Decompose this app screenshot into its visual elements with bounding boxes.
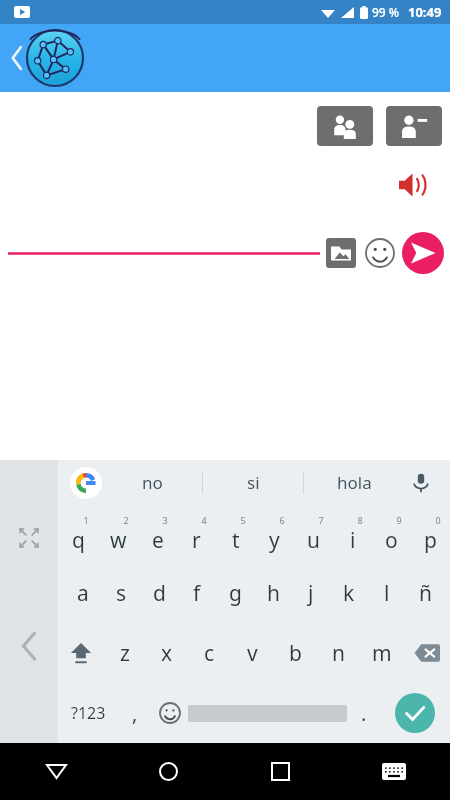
button[interactable]: j	[292, 564, 330, 623]
staticText: z	[120, 639, 130, 668]
button[interactable]: 0	[411, 505, 450, 564]
staticText: 10:49	[408, 3, 442, 21]
button[interactable]: Space	[188, 700, 347, 726]
button[interactable]: Emoji	[151, 683, 188, 743]
staticText: si	[247, 471, 260, 494]
staticText: k	[343, 579, 355, 608]
staticText: u	[307, 526, 320, 555]
staticText: r	[192, 526, 201, 555]
button[interactable]: n	[317, 623, 360, 683]
staticText: h	[267, 579, 280, 608]
button[interactable]: c	[188, 623, 231, 683]
staticText: g	[229, 579, 242, 608]
button[interactable]: Voice input	[404, 466, 438, 500]
button[interactable]: 2	[98, 505, 138, 564]
staticText: v	[247, 639, 258, 668]
button[interactable]: Shift	[58, 623, 104, 683]
staticText: 2	[123, 514, 129, 526]
button[interactable]: Hide keyboard	[0, 743, 112, 800]
button[interactable]: 8	[333, 505, 372, 564]
staticText: 1	[83, 514, 89, 526]
button[interactable]: Previous	[0, 616, 58, 676]
button[interactable]: Contact avatar	[26, 29, 84, 87]
button[interactable]: 6	[255, 505, 294, 564]
button[interactable]: Emoji	[364, 237, 396, 269]
staticText: ñ	[419, 579, 432, 608]
button[interactable]: g	[216, 564, 254, 623]
staticText: .	[361, 700, 367, 727]
button[interactable]: m	[360, 623, 403, 683]
button[interactable]: v	[231, 623, 274, 683]
button[interactable]: Backspace	[403, 623, 450, 683]
staticText: o	[385, 526, 398, 555]
button[interactable]: Add participants	[317, 106, 373, 146]
button[interactable]: 3	[138, 505, 177, 564]
staticText: s	[116, 579, 127, 608]
button[interactable]: ,	[118, 683, 151, 743]
staticText: e	[152, 526, 164, 555]
button[interactable]: Home	[112, 743, 224, 800]
staticText: ?123	[71, 702, 106, 724]
staticText: p	[424, 526, 437, 555]
button[interactable]: 1	[58, 505, 98, 564]
staticText: b	[289, 639, 302, 668]
staticText: t	[232, 526, 240, 555]
staticText: ,	[132, 700, 138, 727]
button[interactable]: si	[203, 460, 303, 505]
staticText: 6	[279, 514, 285, 526]
button[interactable]: .	[347, 683, 380, 743]
staticText: i	[350, 526, 356, 555]
button[interactable]: b	[274, 623, 317, 683]
staticText: hola	[337, 471, 372, 494]
button[interactable]: x	[146, 623, 188, 683]
button[interactable]: hola	[304, 460, 404, 505]
button[interactable]: Send	[402, 232, 444, 274]
staticText: w	[110, 526, 127, 555]
staticText: d	[153, 579, 166, 608]
button[interactable]: Recents	[224, 743, 337, 800]
staticText: 0	[435, 514, 441, 526]
staticText: n	[332, 639, 345, 668]
button[interactable]: ñ	[406, 564, 444, 623]
button[interactable]: no	[102, 460, 202, 505]
button[interactable]: 5	[216, 505, 255, 564]
staticText: y	[269, 526, 280, 555]
button[interactable]: d	[140, 564, 178, 623]
button[interactable]: Attach image	[326, 238, 356, 268]
staticText: f	[193, 579, 201, 608]
button[interactable]: z	[104, 623, 146, 683]
staticText: 4	[201, 514, 207, 526]
staticText: 7	[318, 514, 324, 526]
button[interactable]: a	[64, 564, 102, 623]
staticText: x	[161, 639, 173, 668]
button[interactable]: 9	[372, 505, 411, 564]
button[interactable]: Sound	[394, 167, 430, 203]
staticText: 8	[357, 514, 363, 526]
button[interactable]: k	[330, 564, 368, 623]
staticText: l	[384, 579, 390, 608]
button[interactable]: 4	[177, 505, 216, 564]
staticText: 3	[162, 514, 168, 526]
button[interactable]: Switch keyboard	[337, 743, 450, 800]
staticText: m	[372, 639, 392, 668]
button[interactable]: l	[368, 564, 406, 623]
button[interactable]: Remove participant	[386, 106, 442, 146]
staticText: no	[142, 471, 163, 494]
button[interactable]: Enter	[380, 683, 450, 743]
staticText: 5	[240, 514, 246, 526]
button[interactable]: 7	[294, 505, 333, 564]
button[interactable]: Resize keyboard	[0, 508, 58, 568]
button[interactable]: h	[254, 564, 292, 623]
staticText: q	[72, 526, 85, 555]
button[interactable]: ?123	[58, 683, 118, 743]
staticText: c	[204, 639, 215, 668]
staticText: a	[77, 579, 89, 608]
staticText: 99 %	[372, 4, 400, 20]
button[interactable]: Back	[0, 41, 34, 75]
button[interactable]: s	[102, 564, 140, 623]
staticText: 9	[396, 514, 402, 526]
button[interactable]: Google	[70, 467, 102, 499]
button[interactable]: f	[178, 564, 216, 623]
staticText: j	[308, 579, 314, 608]
